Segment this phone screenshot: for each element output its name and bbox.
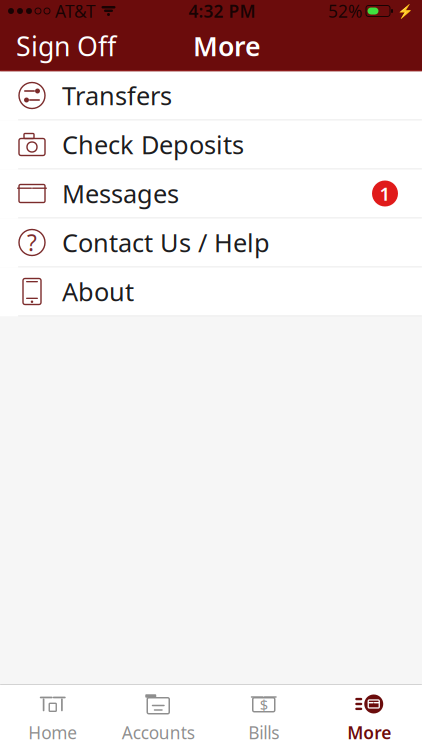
staticText: Transfers	[62, 79, 172, 112]
button[interactable]: Messages	[0, 169, 422, 218]
staticText: ⚡	[397, 3, 414, 19]
button[interactable]: Check Deposits	[0, 120, 422, 169]
staticText: Messages	[62, 177, 179, 210]
staticText: AT&T	[55, 0, 96, 22]
staticText: Home	[28, 721, 77, 744]
button[interactable]: About	[0, 267, 422, 316]
staticText: 1	[379, 181, 390, 206]
staticText: ?	[27, 227, 37, 257]
button[interactable]: Home	[0, 685, 105, 750]
staticText: 4:32 PM	[188, 0, 255, 22]
button[interactable]: More	[316, 685, 422, 750]
staticText: About	[62, 275, 134, 308]
staticText: Check Deposits	[62, 128, 244, 161]
button[interactable]: Sign Off	[0, 16, 132, 76]
staticText: Bills	[248, 721, 279, 744]
staticText: More	[347, 721, 391, 744]
button[interactable]: Transfers	[0, 71, 422, 120]
button[interactable]: $	[211, 685, 316, 750]
button[interactable]: Accounts	[105, 685, 211, 750]
staticText: More	[193, 28, 261, 64]
staticText: Contact Us / Help	[62, 226, 270, 259]
button[interactable]: ?	[0, 218, 422, 267]
staticText: Sign Off	[16, 28, 116, 64]
staticText: Accounts	[122, 721, 195, 744]
staticText: 52%	[328, 0, 362, 22]
staticText: $	[260, 695, 268, 714]
